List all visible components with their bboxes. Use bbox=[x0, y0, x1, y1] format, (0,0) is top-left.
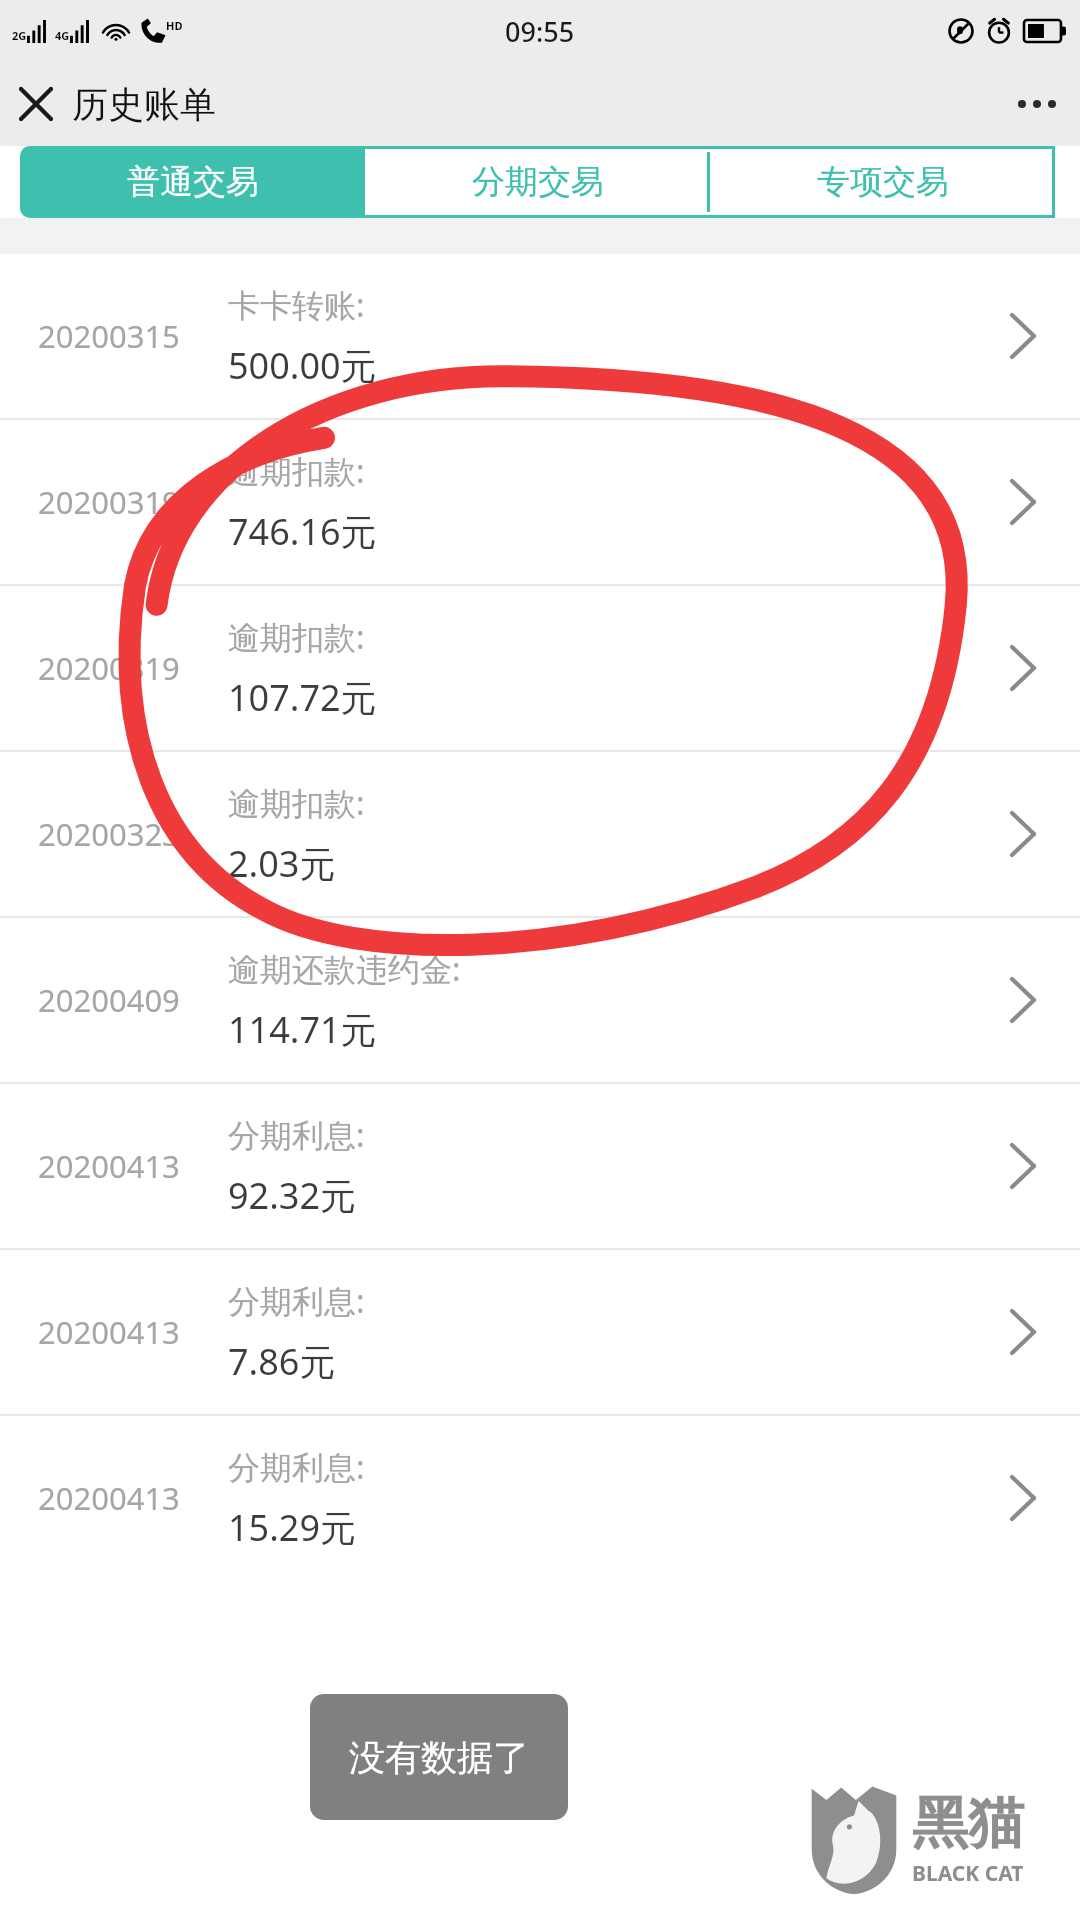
staticText: 500.00元 bbox=[228, 341, 377, 390]
staticText: 普通交易 bbox=[127, 161, 259, 203]
button[interactable]: 普通交易 bbox=[20, 146, 365, 218]
staticText: 逾期扣款: bbox=[228, 449, 365, 493]
button[interactable]: 20200413 bbox=[0, 1416, 1080, 1580]
button[interactable]: 20200413 bbox=[0, 1250, 1080, 1414]
staticText: 分期利息: bbox=[228, 1113, 365, 1157]
staticText: 20200409 bbox=[38, 979, 180, 1021]
staticText: 09:55 bbox=[505, 13, 575, 50]
staticText: 20200319 bbox=[38, 647, 180, 689]
button[interactable]: 20200413 bbox=[0, 1084, 1080, 1248]
button[interactable]: 专项交易 bbox=[710, 146, 1055, 218]
staticText: 20200323 bbox=[38, 813, 180, 855]
staticText: 逾期还款违约金: bbox=[228, 947, 461, 991]
staticText: 107.72元 bbox=[228, 673, 377, 722]
staticText: 20200315 bbox=[38, 315, 180, 357]
staticText: 逾期扣款: bbox=[228, 781, 365, 825]
staticText: 分期利息: bbox=[228, 1445, 365, 1489]
staticText: 黑猫 bbox=[912, 1788, 1024, 1859]
staticText: 746.16元 bbox=[228, 507, 377, 556]
staticText: 114.71元 bbox=[228, 1005, 377, 1054]
button[interactable]: More options bbox=[994, 68, 1080, 140]
button[interactable]: Close bbox=[0, 68, 72, 140]
staticText: 2.03元 bbox=[228, 839, 336, 888]
button[interactable]: 20200409 bbox=[0, 918, 1080, 1082]
staticText: BLACK CAT bbox=[912, 1859, 1024, 1888]
staticText: 20200319 bbox=[38, 481, 180, 523]
staticText: 卡卡转账: bbox=[228, 283, 365, 327]
staticText: 20200413 bbox=[38, 1311, 180, 1353]
button[interactable]: 20200319 bbox=[0, 420, 1080, 584]
staticText: 4G bbox=[55, 28, 70, 43]
staticText: HD bbox=[166, 18, 183, 33]
staticText: 历史账单 bbox=[72, 82, 216, 127]
staticText: 7.86元 bbox=[228, 1337, 336, 1386]
staticText: 逾期扣款: bbox=[228, 615, 365, 659]
staticText: 分期交易 bbox=[472, 161, 604, 203]
staticText: 分期利息: bbox=[228, 1279, 365, 1323]
staticText: 没有数据了 bbox=[349, 1735, 529, 1780]
button[interactable]: 20200315 bbox=[0, 254, 1080, 418]
staticText: 15.29元 bbox=[228, 1503, 357, 1552]
staticText: 20200413 bbox=[38, 1477, 180, 1519]
button[interactable]: 分期交易 bbox=[365, 146, 710, 218]
button[interactable]: 20200323 bbox=[0, 752, 1080, 916]
button[interactable]: 20200319 bbox=[0, 586, 1080, 750]
staticText: 2G bbox=[12, 28, 27, 43]
staticText: 92.32元 bbox=[228, 1171, 357, 1220]
staticText: 专项交易 bbox=[817, 161, 949, 203]
staticText: 20200413 bbox=[38, 1145, 180, 1187]
